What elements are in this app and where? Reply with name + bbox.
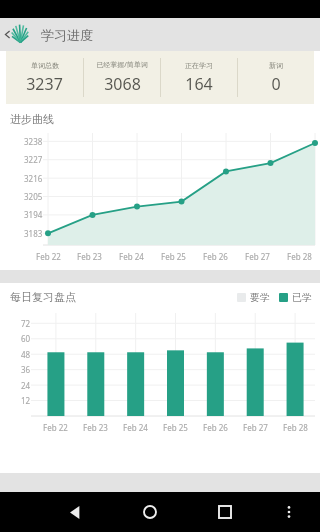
staticText: 已学 bbox=[292, 291, 312, 304]
button[interactable]: 已经掌握/简单词 bbox=[84, 51, 160, 104]
button[interactable]: Recent apps bbox=[208, 495, 242, 529]
staticText: Feb 28 bbox=[283, 422, 308, 433]
staticText: Feb 27 bbox=[245, 251, 270, 262]
staticText: 3194 bbox=[24, 209, 43, 220]
staticText: 3216 bbox=[24, 173, 43, 184]
button[interactable]: 已学 bbox=[279, 291, 312, 304]
staticText: 48 bbox=[21, 349, 31, 360]
staticText: 164 bbox=[185, 73, 213, 95]
staticText: Feb 24 bbox=[119, 251, 144, 262]
staticText: 36 bbox=[21, 364, 31, 375]
staticText: 3227 bbox=[24, 154, 43, 165]
staticText: Feb 25 bbox=[161, 251, 186, 262]
staticText: Feb 26 bbox=[203, 422, 228, 433]
button[interactable]: Back bbox=[0, 18, 15, 51]
staticText: 3205 bbox=[24, 191, 43, 202]
staticText: Feb 24 bbox=[123, 422, 148, 433]
button[interactable]: 单词总数 bbox=[6, 51, 83, 104]
staticText: Feb 23 bbox=[77, 251, 102, 262]
staticText: 正在学习 bbox=[185, 61, 213, 70]
staticText: Feb 26 bbox=[203, 251, 228, 262]
staticText: 单词总数 bbox=[31, 61, 59, 70]
staticText: 3237 bbox=[26, 73, 63, 95]
button[interactable]: 新词 bbox=[238, 51, 314, 104]
button[interactable]: Home bbox=[133, 495, 167, 529]
staticText: 24 bbox=[21, 380, 31, 391]
staticText: 每日复习盘点 bbox=[10, 290, 76, 304]
staticText: Feb 22 bbox=[36, 251, 61, 262]
staticText: 0 bbox=[271, 73, 281, 95]
staticText: 3183 bbox=[24, 228, 43, 239]
staticText: 3068 bbox=[104, 73, 141, 95]
staticText: 12 bbox=[21, 395, 31, 406]
staticText: 学习进度 bbox=[41, 27, 93, 43]
button[interactable]: 要学 bbox=[237, 291, 270, 304]
staticText: 72 bbox=[21, 318, 31, 329]
staticText: 要学 bbox=[250, 291, 270, 304]
staticText: Feb 22 bbox=[43, 422, 68, 433]
staticText: Feb 28 bbox=[287, 251, 312, 262]
staticText: 60 bbox=[21, 333, 31, 344]
staticText: Feb 25 bbox=[163, 422, 188, 433]
staticText: 进步曲线 bbox=[10, 112, 54, 126]
staticText: Feb 27 bbox=[243, 422, 268, 433]
button[interactable]: More options bbox=[275, 498, 303, 526]
button[interactable]: 正在学习 bbox=[161, 51, 237, 104]
staticText: 新词 bbox=[269, 61, 283, 70]
staticText: 3238 bbox=[24, 136, 43, 147]
staticText: 已经掌握/简单词 bbox=[96, 60, 148, 70]
staticText: Feb 23 bbox=[83, 422, 108, 433]
button[interactable]: Back bbox=[58, 495, 92, 529]
